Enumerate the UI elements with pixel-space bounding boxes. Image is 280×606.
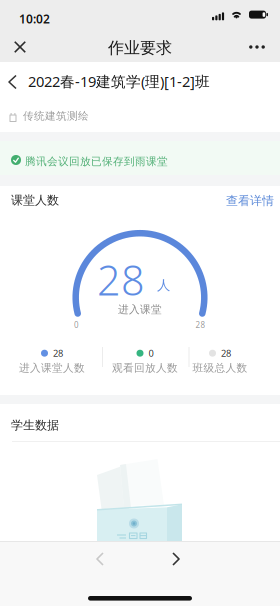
staticText: 进入课堂 [118, 303, 162, 316]
staticText: 进入课堂人数 [19, 361, 85, 374]
staticText: 28 [195, 319, 205, 330]
staticText: 作业要求 [108, 38, 172, 58]
staticText: 课堂人数 [11, 193, 59, 207]
staticText: 查看详情 [226, 193, 274, 208]
button[interactable]: Close [5, 32, 35, 62]
staticText: 人 [157, 277, 170, 293]
staticText: 腾讯会议回放已保存到雨课堂 [25, 155, 168, 168]
staticText: 28 [53, 347, 63, 359]
staticText: 学生数据 [11, 418, 59, 432]
staticText: 10:02 [19, 11, 50, 27]
staticText: 观看回放人数 [112, 361, 178, 374]
staticText: 8 [121, 252, 145, 307]
staticText: 0 [74, 319, 79, 330]
staticText: 2 [97, 252, 121, 307]
staticText: 班级总人数 [192, 361, 247, 374]
button[interactable]: 查看详情 [224, 191, 276, 210]
staticText: 传统建筑测绘 [23, 109, 89, 123]
button[interactable]: More [240, 32, 274, 62]
staticText: 0 [148, 347, 153, 359]
staticText: 2022春-19建筑学(理)[1-2]班 [28, 71, 210, 91]
button[interactable]: Previous [80, 542, 120, 576]
staticText: 28 [221, 347, 231, 359]
button[interactable]: Next [156, 542, 196, 576]
button[interactable]: 2022春-19建筑学(理)[1-2]班 [0, 62, 280, 100]
